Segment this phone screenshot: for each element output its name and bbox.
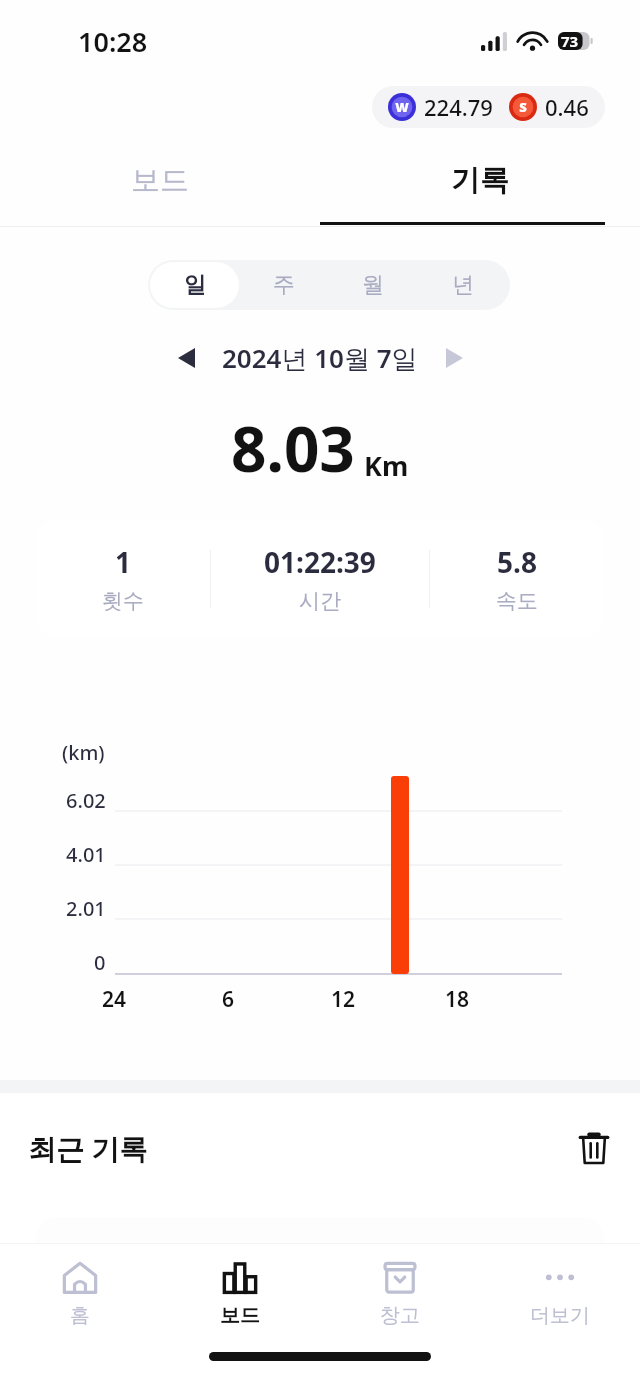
button[interactable]: 년 — [418, 262, 508, 308]
staticText: 5.8 — [497, 543, 537, 581]
staticText: 횟수 — [102, 588, 144, 614]
staticText: 18 — [445, 985, 470, 1014]
button[interactable]: 1 — [36, 519, 604, 638]
button[interactable]: 일 — [150, 262, 239, 308]
staticText: (km) — [62, 739, 105, 766]
staticText: 0 — [94, 949, 106, 976]
staticText: 기록 — [451, 162, 509, 199]
button[interactable]: 홈 — [0, 1244, 160, 1344]
staticText: 속도 — [496, 588, 538, 614]
staticText: 주 — [273, 271, 295, 299]
staticText: 6.02 — [66, 787, 106, 814]
staticText: 월 — [362, 271, 384, 299]
staticText: S — [519, 98, 527, 116]
staticText: 4.01 — [66, 841, 106, 868]
staticText: 10:28 — [78, 23, 148, 60]
staticText: 6 — [222, 985, 235, 1014]
staticText: 0.46 — [545, 92, 589, 122]
button[interactable]: 기록 — [320, 146, 640, 227]
staticText: 최근 기록 — [28, 1129, 148, 1167]
button[interactable]: 월 — [328, 262, 418, 308]
staticText: 보드 — [131, 162, 189, 199]
staticText: 창고 — [380, 1303, 420, 1328]
staticText: 년 — [452, 271, 474, 299]
button[interactable]: 보드 — [160, 1244, 320, 1344]
button[interactable]: 주 — [239, 262, 328, 308]
staticText: 2024년 10월 7일 — [222, 340, 418, 376]
staticText: 01:22:39 — [264, 543, 376, 581]
staticText: 24 — [102, 985, 127, 1014]
staticText: 12 — [331, 985, 356, 1014]
button[interactable]: 보드 — [0, 146, 320, 227]
button[interactable]: 창고 — [320, 1244, 480, 1344]
button[interactable]: Previous day — [164, 336, 208, 380]
staticText: Km — [364, 447, 409, 484]
staticText: 시간 — [299, 588, 341, 614]
button[interactable]: 더보기 — [480, 1244, 640, 1344]
staticText: 1 — [115, 543, 132, 581]
staticText: 더보기 — [530, 1303, 590, 1328]
staticText: 8.03 — [231, 406, 355, 490]
button[interactable]: Delete records — [568, 1122, 620, 1174]
staticText: 73 — [561, 31, 579, 51]
staticText: 2.01 — [66, 895, 106, 922]
staticText: 홈 — [70, 1303, 90, 1328]
staticText: 224.79 — [424, 92, 493, 122]
button[interactable]: W — [372, 86, 605, 128]
staticText: 일 — [184, 271, 206, 299]
staticText: W — [395, 98, 409, 116]
staticText: 보드 — [220, 1303, 260, 1328]
button[interactable]: Next day — [432, 336, 476, 380]
